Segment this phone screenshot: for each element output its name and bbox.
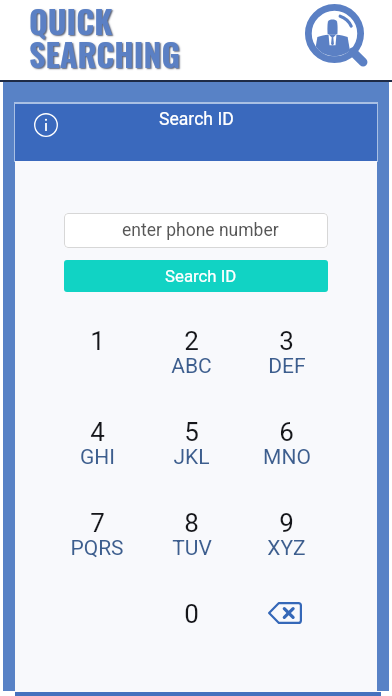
- staticText: 2: [184, 326, 199, 356]
- staticText: Search ID: [159, 109, 234, 130]
- button[interactable]: 7: [50, 508, 144, 599]
- button[interactable]: 6: [239, 417, 334, 508]
- button[interactable]: 0: [144, 599, 239, 690]
- button[interactable]: Info: [15, 104, 377, 161]
- button[interactable]: Info: [30, 109, 62, 141]
- staticText: Search ID: [165, 266, 237, 286]
- staticText: 8: [184, 508, 199, 538]
- staticText: TUV: [172, 536, 212, 561]
- staticText: 1: [90, 326, 105, 356]
- staticText: 3: [279, 326, 294, 356]
- staticText: 6: [279, 417, 294, 447]
- button[interactable]: 4: [50, 417, 144, 508]
- staticText: PQRS: [70, 536, 124, 561]
- button[interactable]: 8: [144, 508, 239, 599]
- staticText: 7: [90, 508, 105, 538]
- button[interactable]: 1: [50, 326, 144, 417]
- staticText: MNO: [263, 445, 311, 470]
- button[interactable]: Backspace: [239, 599, 334, 690]
- staticText: SEARCHING: [29, 30, 181, 77]
- button[interactable]: 5: [144, 417, 239, 508]
- staticText: QUICK: [29, 0, 113, 44]
- button[interactable]: enter phone number: [64, 213, 328, 248]
- button[interactable]: 3: [239, 326, 334, 417]
- staticText: enter phone number: [122, 220, 279, 241]
- staticText: ABC: [171, 354, 212, 379]
- staticText: 5: [184, 417, 199, 447]
- staticText: DEF: [268, 354, 306, 379]
- button[interactable]: 9: [239, 508, 334, 599]
- staticText: 4: [90, 417, 105, 447]
- button[interactable]: Search ID: [64, 260, 328, 292]
- button[interactable]: 2: [144, 326, 239, 417]
- staticText: XYZ: [267, 536, 306, 561]
- staticText: GHI: [80, 445, 115, 470]
- staticText: 0: [184, 599, 199, 629]
- staticText: JKL: [173, 445, 210, 470]
- staticText: 9: [279, 508, 294, 538]
